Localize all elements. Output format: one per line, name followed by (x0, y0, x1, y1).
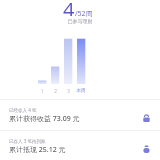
staticText: 已参与理财 (0, 18, 160, 24)
button[interactable]: 已存入 3 笔待到账 (0, 131, 160, 160)
other: Cash back (142, 145, 151, 154)
button[interactable]: 已经存入 4 笔 (0, 100, 160, 130)
staticText: 3 (67, 88, 70, 94)
staticText: 本周 (76, 88, 86, 94)
staticText: 4 (63, 0, 75, 16)
staticText: 累计获得收益 73.09 元 (9, 114, 80, 124)
staticText: 1 (41, 88, 44, 94)
staticText: 已存入 3 笔待到账 (9, 138, 46, 144)
staticText: /52周 (75, 9, 93, 19)
staticText: 2 (54, 88, 57, 94)
other: Locked savings (142, 114, 151, 123)
staticText: 已经存入 4 笔 (9, 107, 37, 113)
staticText: 累计抵现 25.12 元 (9, 145, 66, 155)
